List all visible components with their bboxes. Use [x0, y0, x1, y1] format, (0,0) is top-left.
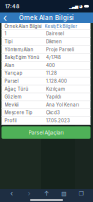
staticText: Meşcere Tip	[4, 110, 32, 115]
button[interactable]: Parsel Ağaçları	[1, 126, 90, 139]
staticText: Kesit/Ek Bilgiler	[44, 23, 77, 29]
staticText: Ağaç Türü	[4, 86, 28, 92]
staticText: Dairesel	[46, 31, 64, 36]
staticText: 1.128.400	[46, 78, 67, 84]
staticText: Bakı/Eğim Yönü	[4, 55, 39, 60]
staticText: 17:48	[5, 3, 19, 9]
staticText: 400	[46, 63, 55, 68]
staticText: Proje Parseli	[46, 47, 74, 52]
staticText: ‹	[10, 189, 13, 198]
staticText: ›	[28, 189, 31, 198]
staticText: Gözlem	[4, 94, 21, 100]
button[interactable]: Tabs	[76, 190, 87, 197]
button[interactable]: Kesit/Ek Bilgiler	[44, 23, 77, 29]
staticText: 1	[4, 31, 6, 36]
staticText: ▤	[61, 190, 66, 197]
button[interactable]: Back	[0, 12, 10, 23]
staticText: ❐	[79, 190, 84, 197]
button[interactable]: Bookmarks	[58, 190, 69, 197]
staticText: Dikmen	[46, 39, 62, 44]
staticText: Yöntem/Alan	[4, 47, 33, 52]
staticText: Örnek Alan Bilgisi	[19, 14, 74, 21]
staticText: 11.28	[46, 70, 57, 76]
staticText: ↑	[44, 190, 49, 197]
staticText: Ana Yol Kenarı	[46, 102, 79, 108]
staticText: Parsel Ağaçları	[28, 129, 63, 136]
button[interactable]: Share	[41, 190, 52, 197]
staticText: 17.05.2023	[46, 118, 70, 123]
staticText: ▁▃▅	[69, 4, 78, 9]
button[interactable]: Örnek Alan Bilgisi	[4, 23, 41, 29]
staticText: Parsel	[4, 78, 18, 84]
staticText: Örnek Alan Bilgisi	[4, 23, 41, 29]
button[interactable]: Forward	[24, 190, 35, 197]
staticText: Çkcd3	[46, 110, 60, 115]
staticText: 4/1748	[46, 55, 61, 60]
staticText: Yarıçap	[4, 70, 22, 76]
staticText: Tipi	[4, 39, 12, 44]
staticText: Profil	[4, 118, 16, 123]
staticText: ‹	[3, 11, 7, 24]
staticText: Kızılçam	[46, 86, 65, 92]
staticText: Alan	[4, 63, 14, 68]
staticText: Yapıldı	[46, 94, 61, 100]
staticText: Mevkii	[4, 102, 18, 108]
button[interactable]: Back	[6, 190, 17, 197]
staticText: ◕	[78, 4, 84, 9]
